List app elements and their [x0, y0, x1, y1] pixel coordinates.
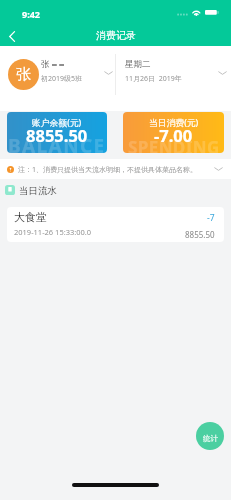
button[interactable]: 张 — [41, 54, 107, 88]
staticText: -7 — [207, 212, 215, 224]
button[interactable]: SPENDING — [123, 112, 224, 153]
staticText: 账户余额(元) — [32, 117, 82, 129]
staticText: 8855.50 — [26, 124, 88, 146]
staticText: 注：1、消费只提供当天流水明细，不提供具体菜品名称。 — [18, 165, 198, 175]
staticText: -7.00 — [154, 124, 193, 146]
staticText: 11月26日 2019年 — [125, 74, 182, 84]
staticText: 消费记录 — [96, 29, 136, 42]
staticText: 星期二 — [125, 59, 151, 70]
button[interactable]: 统计 — [196, 422, 224, 450]
staticText: 当日流水 — [19, 185, 57, 197]
staticText: 8855.50 — [185, 229, 215, 240]
staticText: 当日消费(元) — [149, 117, 199, 129]
button[interactable]: Back — [0, 24, 24, 48]
button[interactable]: 大食堂 — [7, 207, 224, 242]
button[interactable]: 星期二 — [125, 54, 209, 88]
button[interactable]: 注：1、消费只提供当天流水明细，不提供具体菜品名称。 — [0, 159, 231, 179]
staticText: 张 — [41, 59, 50, 70]
staticText: 初2019级5班 — [41, 74, 83, 84]
staticText: 9:42 — [22, 8, 40, 20]
staticText: BALANCE — [8, 133, 106, 153]
button[interactable]: BALANCE — [7, 112, 107, 153]
staticText: SPENDING — [128, 136, 220, 153]
staticText: 张 — [16, 65, 31, 84]
staticText: 大食堂 — [14, 210, 47, 224]
staticText: 2019-11-26 15:33:00.0 — [14, 227, 92, 237]
staticText: 统计 — [203, 434, 218, 443]
